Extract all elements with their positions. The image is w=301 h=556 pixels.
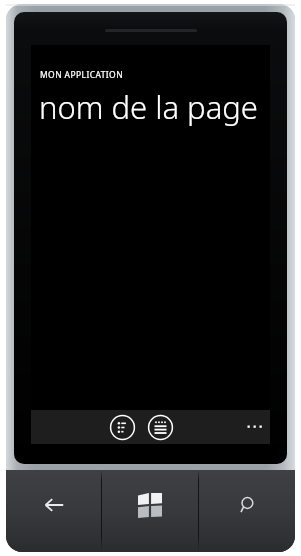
button[interactable]: List <box>147 414 174 441</box>
button[interactable]: Search <box>199 470 295 552</box>
button[interactable]: Arrange <box>109 414 136 441</box>
staticText: nom de la page <box>39 86 270 128</box>
button[interactable]: More <box>240 410 270 444</box>
staticText: MON APPLICATION <box>40 69 123 81</box>
button[interactable]: Start <box>102 470 198 552</box>
button[interactable]: Back <box>6 470 101 552</box>
